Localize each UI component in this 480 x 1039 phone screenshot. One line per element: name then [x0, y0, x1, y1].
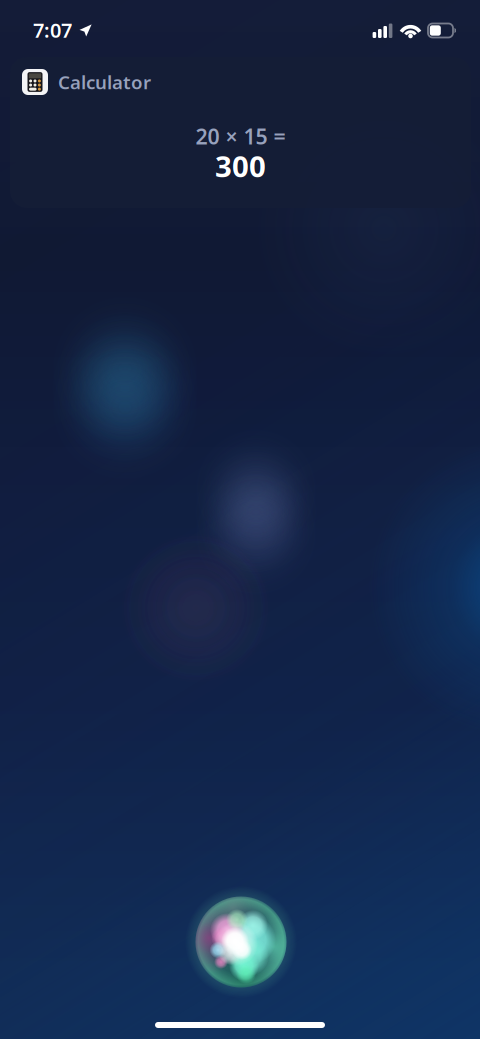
staticText: Calculator — [58, 70, 151, 94]
staticText: 20 × 15 = — [195, 122, 285, 150]
staticText: 7:07 — [33, 17, 72, 43]
staticText: 300 — [215, 146, 266, 185]
button[interactable]: Calculator — [10, 57, 471, 208]
button[interactable]: Siri — [185, 886, 297, 998]
